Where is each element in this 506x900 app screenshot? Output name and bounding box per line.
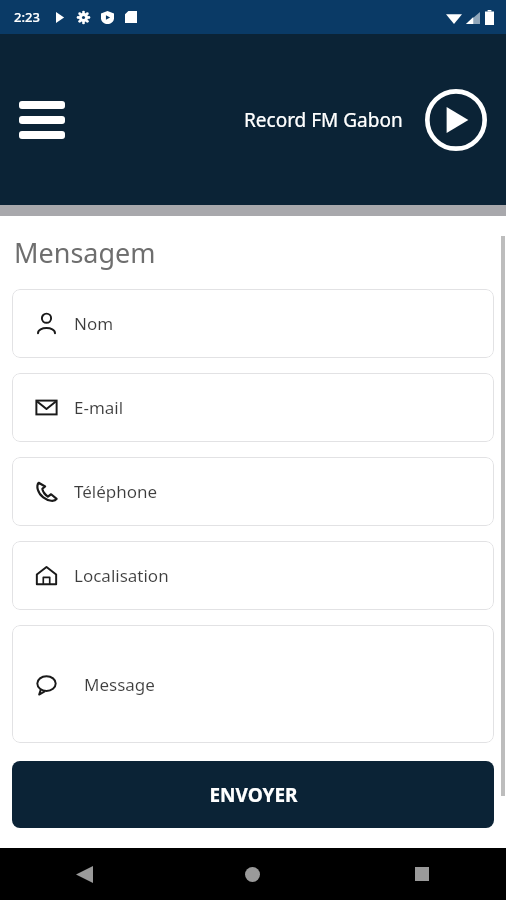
button[interactable]: Nom (12, 289, 494, 358)
staticText: Nom (74, 312, 114, 335)
staticText: Téléphone (74, 480, 158, 503)
button[interactable]: Play radio stream (423, 87, 489, 153)
button[interactable]: Home (168, 848, 337, 900)
button[interactable]: Open navigation menu (14, 92, 70, 148)
staticText: Message (84, 673, 155, 696)
button[interactable]: Back (0, 848, 168, 900)
button[interactable]: Téléphone (12, 457, 494, 526)
button[interactable]: E-mail (12, 373, 494, 442)
staticText: E-mail (74, 396, 124, 419)
staticText: Mensagem (14, 234, 156, 271)
staticText: Localisation (74, 564, 169, 587)
button[interactable]: Recent apps (337, 848, 506, 900)
staticText: Record FM Gabon (244, 107, 403, 133)
staticText: 2:23 (14, 8, 40, 26)
button[interactable]: Message (12, 625, 494, 743)
button[interactable]: ENVOYER (12, 761, 494, 828)
button[interactable]: Localisation (12, 541, 494, 610)
staticText: ENVOYER (209, 782, 298, 808)
